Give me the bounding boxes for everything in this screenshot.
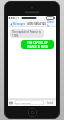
button[interactable]: Home: [28, 108, 37, 117]
button[interactable]: Camera: [9, 101, 13, 105]
button[interactable]: THE CAPITAL OF FRANCE IS PARIS: [21, 40, 54, 49]
staticText: THE CAPITAL OF FRANCE IS PARIS: [23, 41, 52, 48]
staticText: Send: [47, 101, 54, 105]
staticText: Messages: [13, 22, 26, 26]
button[interactable]: Details: [46, 20, 55, 27]
staticText: Details: [47, 20, 54, 27]
staticText: Text Message: [15, 101, 31, 104]
button[interactable]: Messages: [9, 22, 27, 26]
staticText: The capital of France is 1789.: [12, 30, 42, 37]
button[interactable]: The capital of France is 1789.: [10, 29, 44, 38]
staticText: (415) 555-0123: [27, 22, 46, 26]
button[interactable]: Text Message: [14, 100, 45, 105]
button[interactable]: Send: [46, 101, 55, 105]
